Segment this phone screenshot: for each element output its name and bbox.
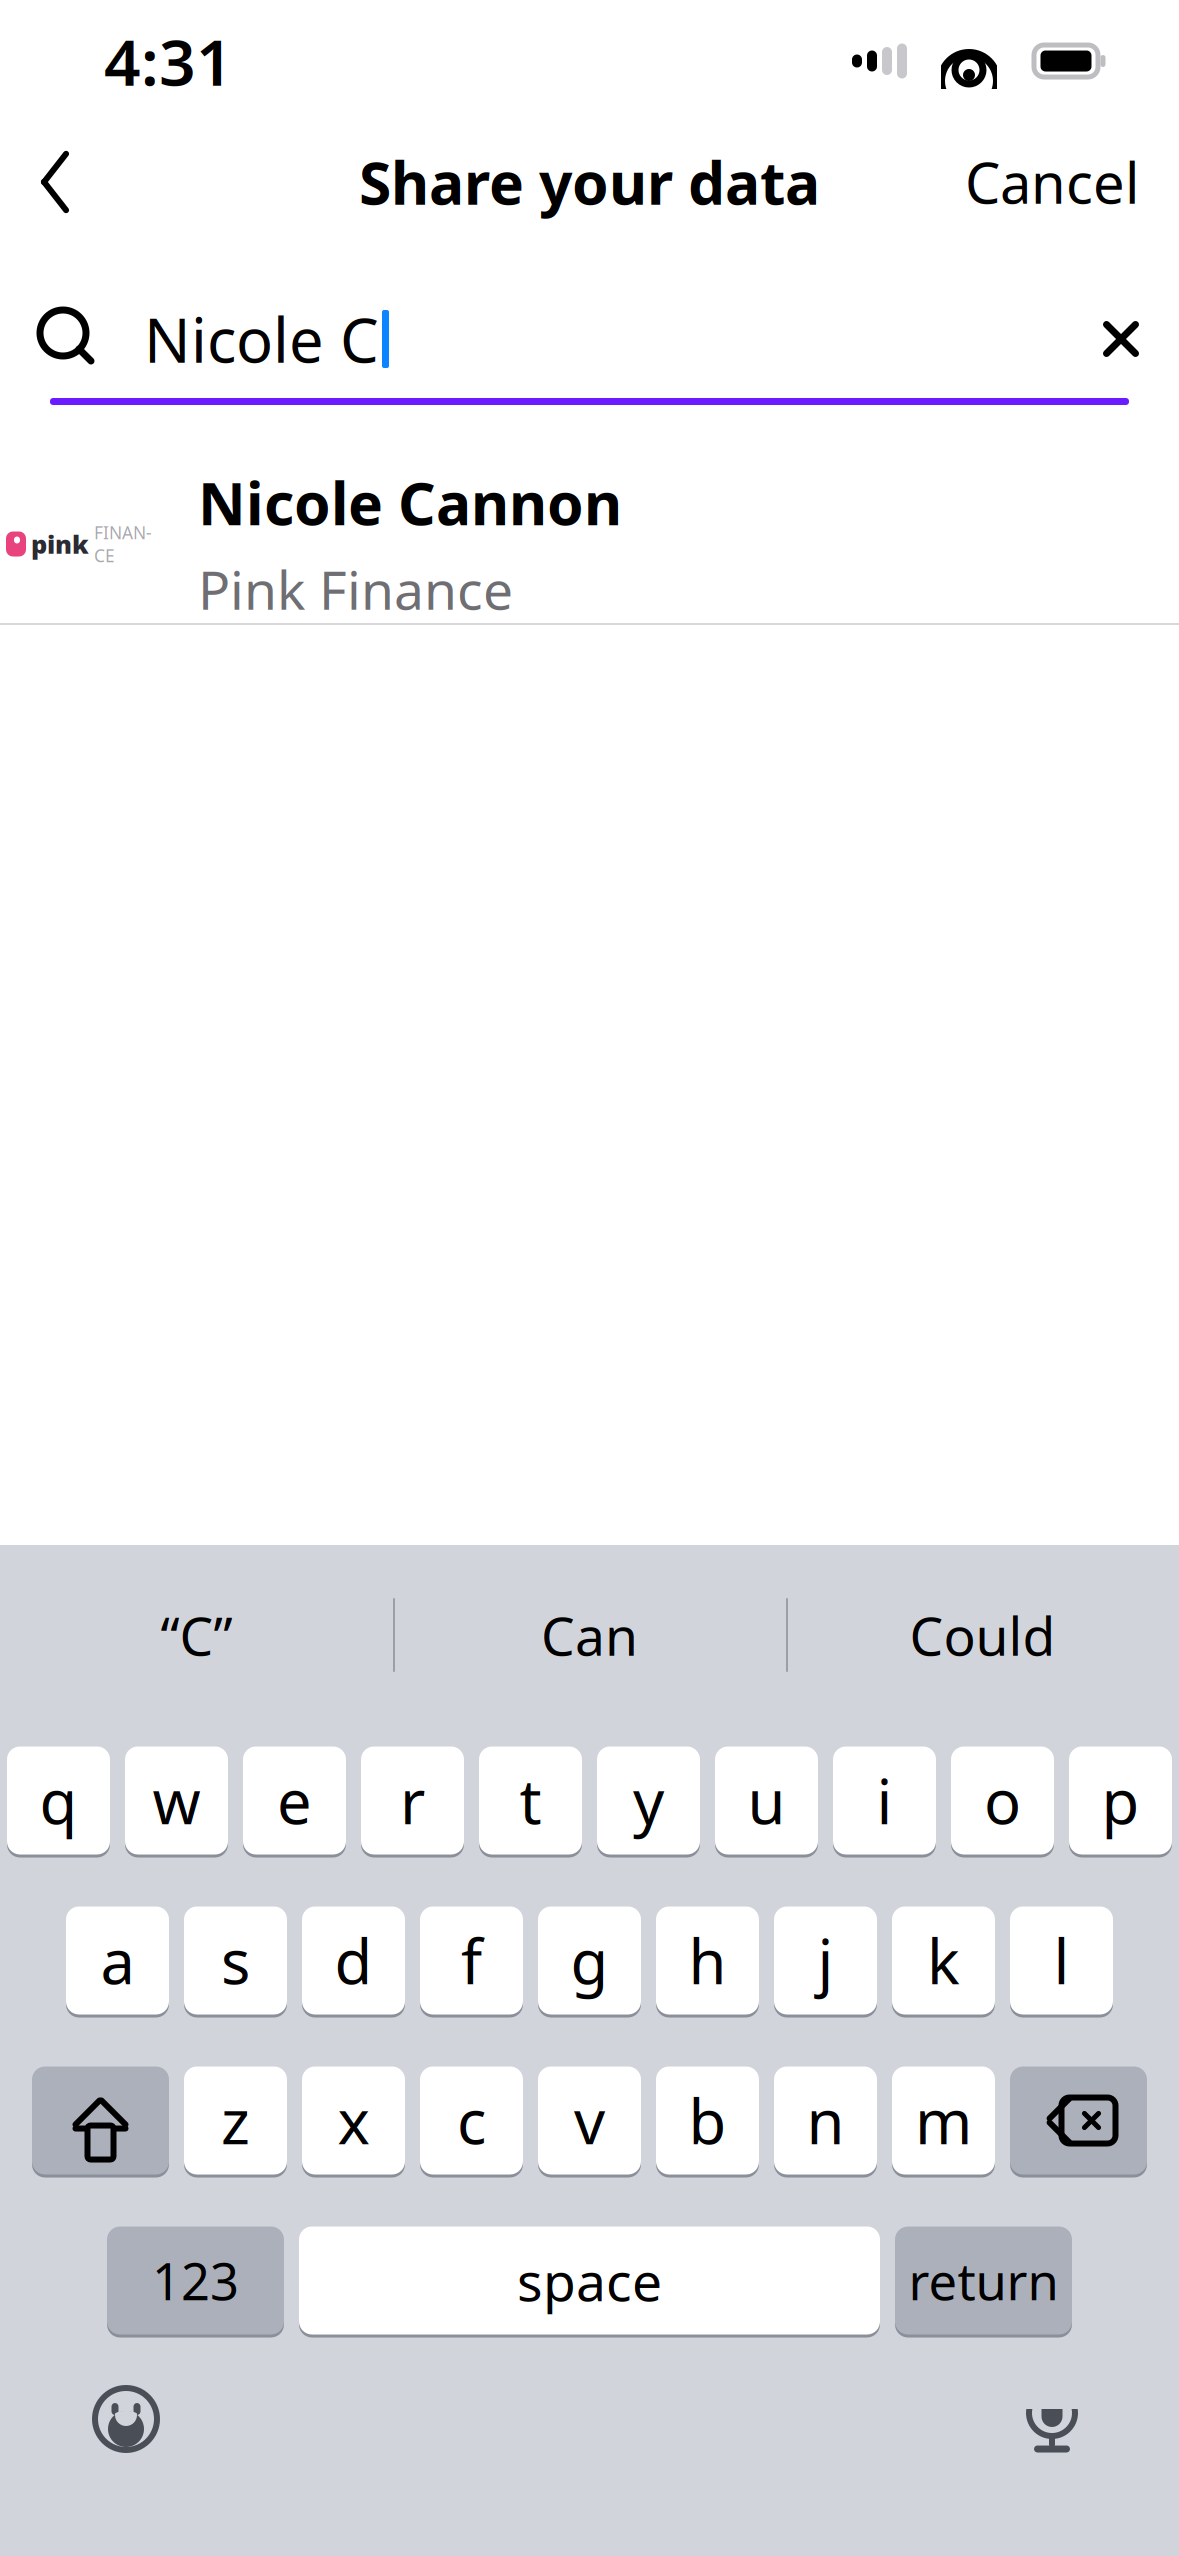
staticText: k <box>927 1920 960 2001</box>
button[interactable]: e <box>243 1745 346 1856</box>
staticText: Can <box>541 1600 638 1670</box>
staticText: l <box>1053 1920 1069 2001</box>
staticText: space <box>517 2245 662 2316</box>
staticText: n <box>806 2080 844 2161</box>
button[interactable]: Dictate <box>1001 2372 1103 2466</box>
staticText: h <box>688 1920 726 2001</box>
button[interactable]: g <box>538 1905 641 2016</box>
staticText: m <box>915 2080 972 2161</box>
button[interactable]: return <box>895 2225 1072 2336</box>
button[interactable]: v <box>538 2065 641 2176</box>
staticText: d <box>334 1920 372 2001</box>
staticText: y <box>633 1760 664 1841</box>
staticText: pink <box>31 527 89 561</box>
staticText: g <box>570 1920 608 2001</box>
staticText: v <box>574 2080 605 2161</box>
button[interactable]: s <box>184 1905 287 2016</box>
staticText: Could <box>909 1600 1055 1670</box>
button[interactable]: k <box>892 1905 995 2016</box>
button[interactable]: n <box>774 2065 877 2176</box>
button[interactable]: y <box>597 1745 700 1856</box>
button[interactable]: h <box>656 1905 759 2016</box>
staticText: o <box>984 1760 1021 1841</box>
button[interactable]: c <box>420 2065 523 2176</box>
button[interactable]: j <box>774 1905 877 2016</box>
staticText: t <box>519 1760 541 1841</box>
staticText: Nicole Cannon <box>198 464 622 541</box>
staticText: u <box>747 1760 785 1841</box>
button[interactable]: 123 <box>107 2225 284 2336</box>
button[interactable]: z <box>184 2065 287 2176</box>
staticText: a <box>100 1920 134 2001</box>
button[interactable]: w <box>125 1745 228 1856</box>
staticText: Nicole C <box>144 298 379 380</box>
button[interactable]: “C” <box>0 1583 393 1687</box>
button[interactable]: f <box>420 1905 523 2016</box>
button[interactable]: Back <box>0 129 110 235</box>
staticText: b <box>688 2080 726 2161</box>
button[interactable]: r <box>361 1745 464 1856</box>
staticText: Cancel <box>965 145 1139 219</box>
staticText: r <box>400 1760 425 1841</box>
staticText: e <box>277 1760 312 1841</box>
button[interactable]: b <box>656 2065 759 2176</box>
staticText: x <box>337 2080 369 2161</box>
button[interactable]: Could <box>786 1583 1179 1687</box>
button[interactable]: Clear text <box>1063 299 1179 379</box>
button[interactable]: t <box>479 1745 582 1856</box>
staticText: return <box>908 2247 1058 2314</box>
staticText: s <box>221 1920 250 2001</box>
button[interactable]: q <box>7 1745 110 1856</box>
button[interactable]: i <box>833 1745 936 1856</box>
button[interactable]: Cancel <box>925 125 1179 239</box>
button[interactable]: Emoji <box>72 2375 180 2463</box>
button[interactable]: l <box>1010 1905 1113 2016</box>
staticText: Pink Finance <box>198 553 513 624</box>
button[interactable]: p <box>1069 1745 1172 1856</box>
button[interactable]: Can <box>393 1583 786 1687</box>
staticText: i <box>876 1760 892 1841</box>
staticText: f <box>461 1920 482 2001</box>
staticText: 123 <box>152 2247 239 2314</box>
button[interactable]: Delete <box>1010 2065 1147 2176</box>
staticText: q <box>39 1760 77 1841</box>
staticText: “C” <box>160 1600 232 1670</box>
button[interactable]: m <box>892 2065 995 2176</box>
button[interactable]: space <box>299 2225 880 2336</box>
staticText: c <box>457 2080 486 2161</box>
staticText: FINANCE <box>94 521 152 567</box>
button[interactable]: Shift <box>32 2065 169 2176</box>
staticText: p <box>1101 1760 1139 1841</box>
button[interactable]: o <box>951 1745 1054 1856</box>
button[interactable]: u <box>715 1745 818 1856</box>
staticText: Share your data <box>359 143 820 221</box>
staticText: j <box>817 1920 833 2001</box>
staticText: z <box>221 2080 250 2161</box>
button[interactable]: d <box>302 1905 405 2016</box>
button[interactable]: a <box>66 1905 169 2016</box>
staticText: 4:31 <box>104 18 233 103</box>
staticText: w <box>152 1760 200 1841</box>
button[interactable]: pink <box>0 465 1179 623</box>
button[interactable]: x <box>302 2065 405 2176</box>
